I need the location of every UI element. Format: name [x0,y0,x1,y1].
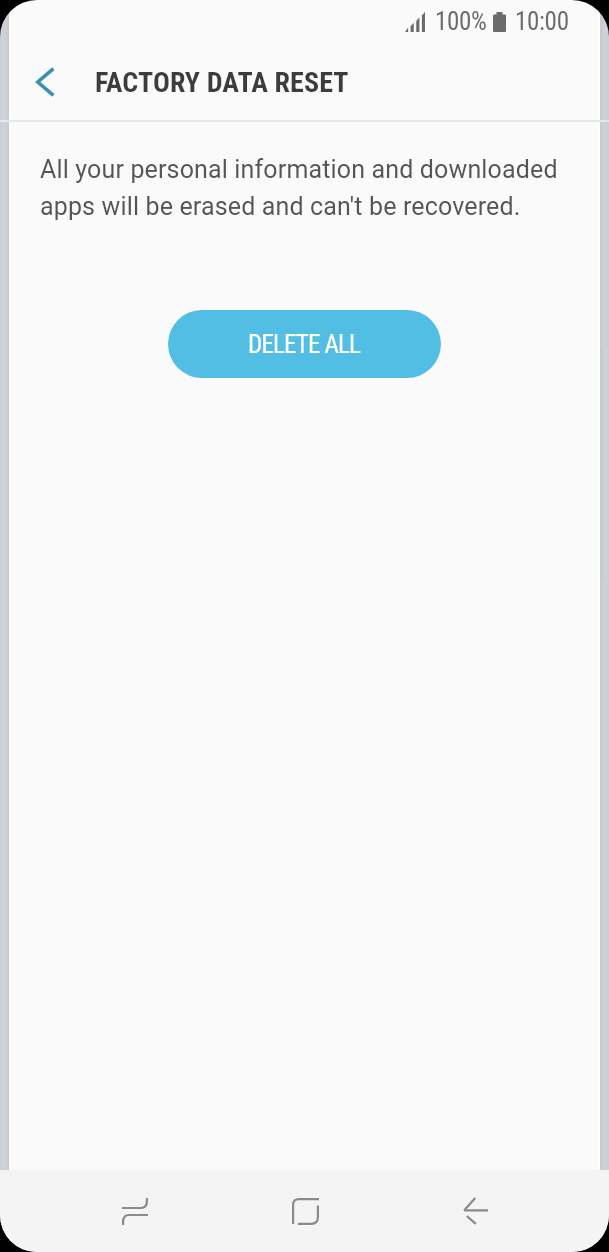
staticText: FACTORY DATA RESET [95,66,349,99]
button[interactable]: DELETE ALL [168,310,441,378]
staticText: 100% [435,7,487,36]
button[interactable]: Home [220,1170,390,1252]
staticText: DELETE ALL [248,330,361,359]
button[interactable]: Navigate up [16,54,72,110]
button[interactable]: Recent apps [50,1170,220,1252]
staticText: All your personal information and downlo… [40,155,585,221]
button[interactable]: Back [390,1170,560,1252]
staticText: 10:00 [515,7,569,36]
